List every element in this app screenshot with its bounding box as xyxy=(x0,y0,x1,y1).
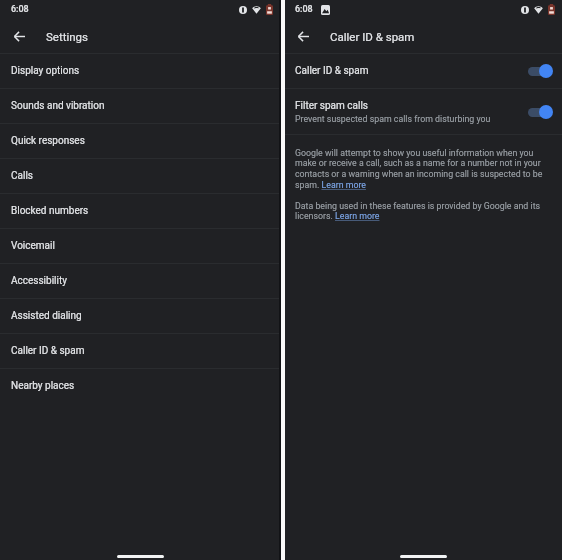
button[interactable]: Toggle xyxy=(527,105,553,119)
staticText: Google will attempt to show you useful i… xyxy=(295,148,547,191)
staticText: Nearby places xyxy=(11,380,75,392)
button[interactable]: Accessibility xyxy=(0,264,280,299)
staticText: Quick responses xyxy=(11,135,85,147)
button[interactable]: Sounds and vibration xyxy=(0,89,280,124)
button[interactable]: Caller ID & spam xyxy=(284,54,562,89)
staticText: Prevent suspected spam calls from distur… xyxy=(295,114,491,124)
button[interactable]: Voicemail xyxy=(0,229,280,264)
staticText: Settings xyxy=(46,30,88,43)
staticText: 6:08 xyxy=(295,4,313,15)
button[interactable]: Toggle xyxy=(527,64,553,78)
button[interactable]: Display options xyxy=(0,54,280,89)
staticText: 6:08 xyxy=(11,4,29,15)
staticText: Caller ID & spam xyxy=(11,345,85,357)
button[interactable]: Back xyxy=(4,21,34,51)
staticText: Filter spam calls xyxy=(295,100,368,112)
button[interactable]: Nearby places xyxy=(0,369,280,404)
button[interactable]: Assisted dialing xyxy=(0,299,280,334)
staticText: Data being used in these features is pro… xyxy=(295,201,547,222)
staticText: Caller ID & spam xyxy=(330,30,415,43)
staticText: Sounds and vibration xyxy=(11,100,105,112)
button[interactable]: Caller ID & spam xyxy=(0,334,280,369)
button[interactable]: Quick responses xyxy=(0,124,280,159)
button[interactable]: Blocked numbers xyxy=(0,194,280,229)
staticText: Blocked numbers xyxy=(11,205,89,217)
button[interactable]: Filter spam calls xyxy=(284,89,562,135)
button[interactable]: Back xyxy=(288,21,318,51)
staticText: Caller ID & spam xyxy=(295,65,369,77)
staticText: Voicemail xyxy=(11,240,55,252)
staticText: Calls xyxy=(11,170,33,182)
staticText: Assisted dialing xyxy=(11,310,82,322)
staticText: Accessibility xyxy=(11,275,67,287)
staticText: Display options xyxy=(11,65,80,77)
button[interactable]: Calls xyxy=(0,159,280,194)
